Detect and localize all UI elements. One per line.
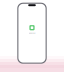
staticText: Get started xyxy=(28,32,35,34)
